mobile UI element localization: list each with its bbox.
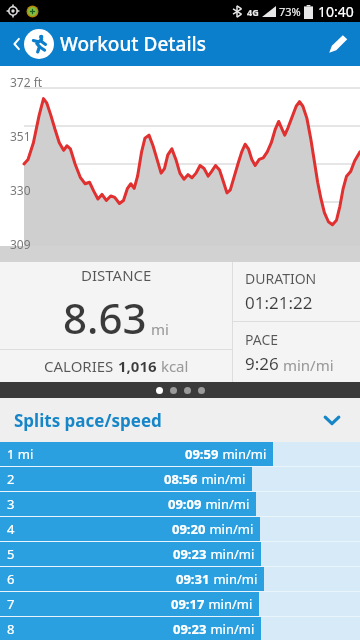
staticText: 2	[7, 470, 15, 488]
staticText: DURATION	[245, 269, 317, 288]
staticText: 4	[7, 520, 15, 538]
staticText: 09:59	[185, 445, 219, 463]
button[interactable]: Splits pace/speed	[0, 398, 360, 442]
staticText: 09:17	[171, 595, 205, 613]
button[interactable]: 5	[0, 542, 360, 566]
staticText: 09:09	[168, 495, 202, 513]
staticText: 3	[7, 495, 15, 513]
staticText: 1 mi	[7, 445, 34, 463]
staticText: 1,016	[118, 356, 157, 376]
staticText: min/mi	[205, 595, 253, 613]
staticText: 8.63	[63, 289, 147, 346]
staticText: 6	[7, 570, 15, 588]
staticText: min/mi	[207, 620, 255, 638]
staticText: 7	[7, 595, 15, 613]
staticText: 08:56	[164, 470, 198, 488]
staticText: 09:23	[173, 545, 207, 563]
staticText: 5	[7, 545, 15, 563]
staticText: min/mi	[279, 355, 334, 375]
button[interactable]: 6	[0, 567, 360, 591]
staticText: mi	[151, 319, 169, 339]
button[interactable]: 2	[0, 467, 360, 491]
staticText: 9:26	[245, 352, 279, 375]
button[interactable]: Edit	[316, 22, 360, 66]
button[interactable]: 4	[0, 517, 360, 541]
staticText: kcal	[157, 356, 189, 376]
staticText: 4G	[247, 6, 259, 18]
staticText: min/mi	[219, 445, 267, 463]
button[interactable]: 1 mi	[0, 442, 360, 466]
button[interactable]: 7	[0, 592, 360, 616]
staticText: 330	[10, 182, 31, 198]
staticText: 309	[10, 236, 31, 252]
staticText: min/mi	[198, 470, 246, 488]
staticText: 8	[7, 620, 15, 638]
button[interactable]: Back	[2, 29, 32, 59]
staticText: 10:40	[318, 2, 354, 21]
button[interactable]: 3	[0, 492, 360, 516]
staticText: DISTANCE	[81, 265, 152, 285]
staticText: Splits pace/speed	[14, 409, 162, 432]
staticText: 09:23	[173, 620, 207, 638]
staticText: Workout Details	[60, 31, 206, 57]
staticText: min/mi	[207, 545, 255, 563]
staticText: 351	[10, 128, 31, 144]
staticText: min/mi	[202, 495, 250, 513]
staticText: 372 ft	[10, 74, 43, 90]
staticText: min/mi	[210, 570, 258, 588]
staticText: CALORIES	[44, 356, 118, 376]
button[interactable]: 8	[0, 617, 360, 640]
staticText: 01:21:22	[245, 291, 313, 314]
staticText: PACE	[245, 330, 279, 349]
staticText: min/mi	[206, 520, 254, 538]
staticText: 73%	[279, 4, 301, 19]
staticText: 09:31	[176, 570, 210, 588]
staticText: 09:20	[172, 520, 206, 538]
